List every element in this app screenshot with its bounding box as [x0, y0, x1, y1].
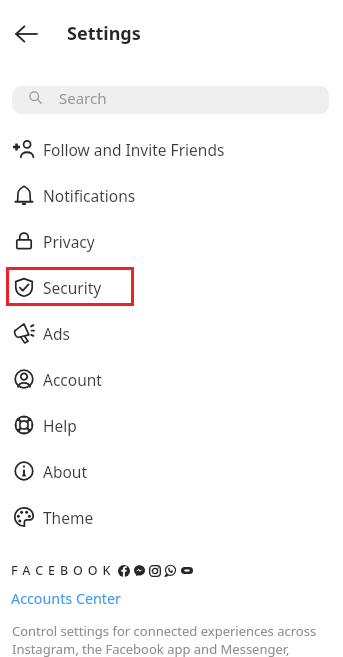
button[interactable]: Notifications	[0, 172, 343, 218]
staticText: Control settings for connected experienc…	[12, 622, 324, 657]
button[interactable]: Privacy	[0, 218, 343, 264]
staticText: Account	[43, 369, 102, 390]
staticText: Security	[43, 277, 102, 298]
staticText: FACEBOOK	[11, 562, 116, 579]
staticText: Privacy	[43, 231, 95, 252]
staticText: About	[43, 461, 87, 482]
staticText: Theme	[43, 507, 94, 528]
button[interactable]: Account	[0, 356, 343, 402]
button[interactable]: Follow and Invite Friends	[0, 126, 343, 172]
button[interactable]: Theme	[0, 494, 343, 540]
button[interactable]: Back	[10, 18, 41, 49]
staticText: Search	[59, 88, 107, 108]
staticText: Ads	[43, 323, 70, 344]
button[interactable]: Security	[0, 264, 343, 310]
staticText: Follow and Invite Friends	[43, 139, 225, 160]
button[interactable]: Ads	[0, 310, 343, 356]
staticText: Help	[43, 415, 77, 436]
button[interactable]: Search	[12, 86, 329, 114]
button[interactable]: Help	[0, 402, 343, 448]
button[interactable]: About	[0, 448, 343, 494]
staticText: Settings	[67, 21, 141, 46]
staticText: Notifications	[43, 185, 136, 206]
button[interactable]: Accounts Center	[11, 589, 121, 608]
